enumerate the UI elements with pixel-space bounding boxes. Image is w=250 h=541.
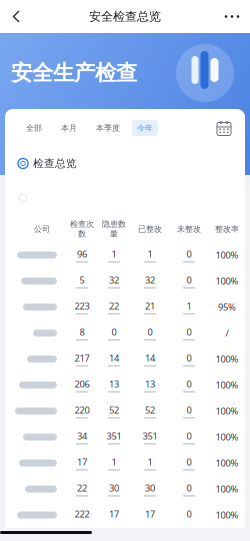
staticText: 100% — [215, 457, 238, 469]
staticText: 0 — [186, 508, 191, 520]
button[interactable]: 32 — [132, 268, 168, 294]
button[interactable]: 30 — [96, 476, 132, 502]
staticText: 已整改 — [138, 224, 162, 234]
button[interactable]: 17 — [132, 502, 168, 528]
staticText: 检查总览 — [33, 157, 77, 170]
button[interactable]: 0 — [132, 320, 168, 346]
button[interactable]: 14 — [96, 346, 132, 372]
staticText: 隐患数 — [102, 219, 126, 229]
staticText: 100% — [215, 379, 238, 391]
staticText: 22 — [77, 482, 87, 494]
staticText: 5 — [79, 274, 84, 286]
button[interactable]: 351 — [96, 424, 132, 450]
button[interactable]: 222 — [64, 502, 100, 528]
button[interactable]: 30 — [132, 476, 168, 502]
button[interactable]: 0 — [171, 242, 207, 268]
staticText: 30 — [145, 482, 155, 494]
button[interactable]: 32 — [96, 268, 132, 294]
button[interactable]: 0 — [96, 320, 132, 346]
staticText: 1 — [186, 300, 191, 312]
button[interactable]: 52 — [132, 398, 168, 424]
button[interactable]: 8 — [64, 320, 100, 346]
button[interactable]: 1 — [171, 294, 207, 320]
button[interactable]: 217 — [64, 346, 100, 372]
staticText: 0 — [186, 430, 191, 442]
staticText: 0 — [186, 456, 191, 468]
staticText: 0 — [186, 404, 191, 416]
button[interactable]: More options — [214, 0, 250, 33]
button[interactable]: 0 — [171, 398, 207, 424]
button[interactable]: 52 — [96, 398, 132, 424]
staticText: 17 — [145, 508, 155, 520]
staticText: 351 — [142, 430, 157, 442]
button[interactable]: 0 — [171, 502, 207, 528]
button[interactable]: 1 — [96, 242, 132, 268]
staticText: 1 — [111, 456, 116, 468]
button[interactable]: 5 — [64, 268, 100, 294]
staticText: 安全检查总览 — [89, 9, 161, 24]
button[interactable]: 0 — [171, 450, 207, 476]
button[interactable]: Back — [0, 0, 36, 33]
staticText: 223 — [74, 300, 89, 312]
staticText: 100% — [215, 275, 238, 287]
button[interactable]: 0 — [171, 372, 207, 398]
staticText: 21 — [145, 300, 155, 312]
staticText: 100% — [215, 405, 238, 417]
staticText: 22 — [109, 300, 119, 312]
button[interactable]: 1 — [96, 450, 132, 476]
button[interactable]: 21 — [132, 294, 168, 320]
staticText: 52 — [145, 404, 155, 416]
staticText: 32 — [145, 274, 155, 286]
staticText: 17 — [109, 508, 119, 520]
staticText: 检查次 — [70, 219, 94, 229]
staticText: 1 — [147, 248, 152, 260]
button[interactable]: 0 — [171, 476, 207, 502]
staticText: 100% — [215, 249, 238, 261]
button[interactable]: 1 — [132, 450, 168, 476]
staticText: 0 — [186, 248, 191, 260]
staticText: 整改率 — [215, 224, 239, 234]
staticText: 0 — [186, 482, 191, 494]
staticText: 206 — [74, 378, 89, 390]
button[interactable]: 全部 — [21, 120, 47, 136]
button[interactable]: 今年 — [132, 120, 158, 136]
staticText: 公司 — [34, 224, 50, 234]
staticText: 全部 — [26, 123, 42, 133]
staticText: 13 — [145, 378, 155, 390]
button[interactable]: 34 — [64, 424, 100, 450]
button[interactable]: 本月 — [56, 120, 82, 136]
staticText: 95% — [218, 301, 236, 313]
button[interactable]: 22 — [64, 476, 100, 502]
button[interactable]: 0 — [171, 346, 207, 372]
staticText: 量 — [110, 229, 118, 239]
button[interactable]: Select date range — [211, 117, 237, 139]
button[interactable]: 13 — [132, 372, 168, 398]
button[interactable]: 17 — [64, 450, 100, 476]
button[interactable]: 96 — [64, 242, 100, 268]
staticText: 52 — [109, 404, 119, 416]
staticText: 14 — [109, 352, 119, 364]
staticText: 100% — [215, 353, 238, 365]
button[interactable]: 0 — [171, 320, 207, 346]
button[interactable]: 1 — [132, 242, 168, 268]
staticText: 17 — [77, 456, 87, 468]
button[interactable]: 13 — [96, 372, 132, 398]
button[interactable]: 220 — [64, 398, 100, 424]
button[interactable]: 0 — [171, 268, 207, 294]
button[interactable]: 0 — [171, 424, 207, 450]
staticText: 13 — [109, 378, 119, 390]
staticText: 100% — [215, 483, 238, 495]
button[interactable]: 206 — [64, 372, 100, 398]
button[interactable]: 22 — [96, 294, 132, 320]
staticText: 1 — [111, 248, 116, 260]
staticText: 0 — [186, 274, 191, 286]
staticText: 32 — [109, 274, 119, 286]
button[interactable]: 223 — [64, 294, 100, 320]
button[interactable]: 351 — [132, 424, 168, 450]
button[interactable]: 14 — [132, 346, 168, 372]
button[interactable]: 本季度 — [91, 120, 125, 136]
staticText: 本季度 — [96, 123, 120, 133]
staticText: 今年 — [137, 123, 153, 133]
staticText: 217 — [74, 352, 89, 364]
button[interactable]: 17 — [96, 502, 132, 528]
